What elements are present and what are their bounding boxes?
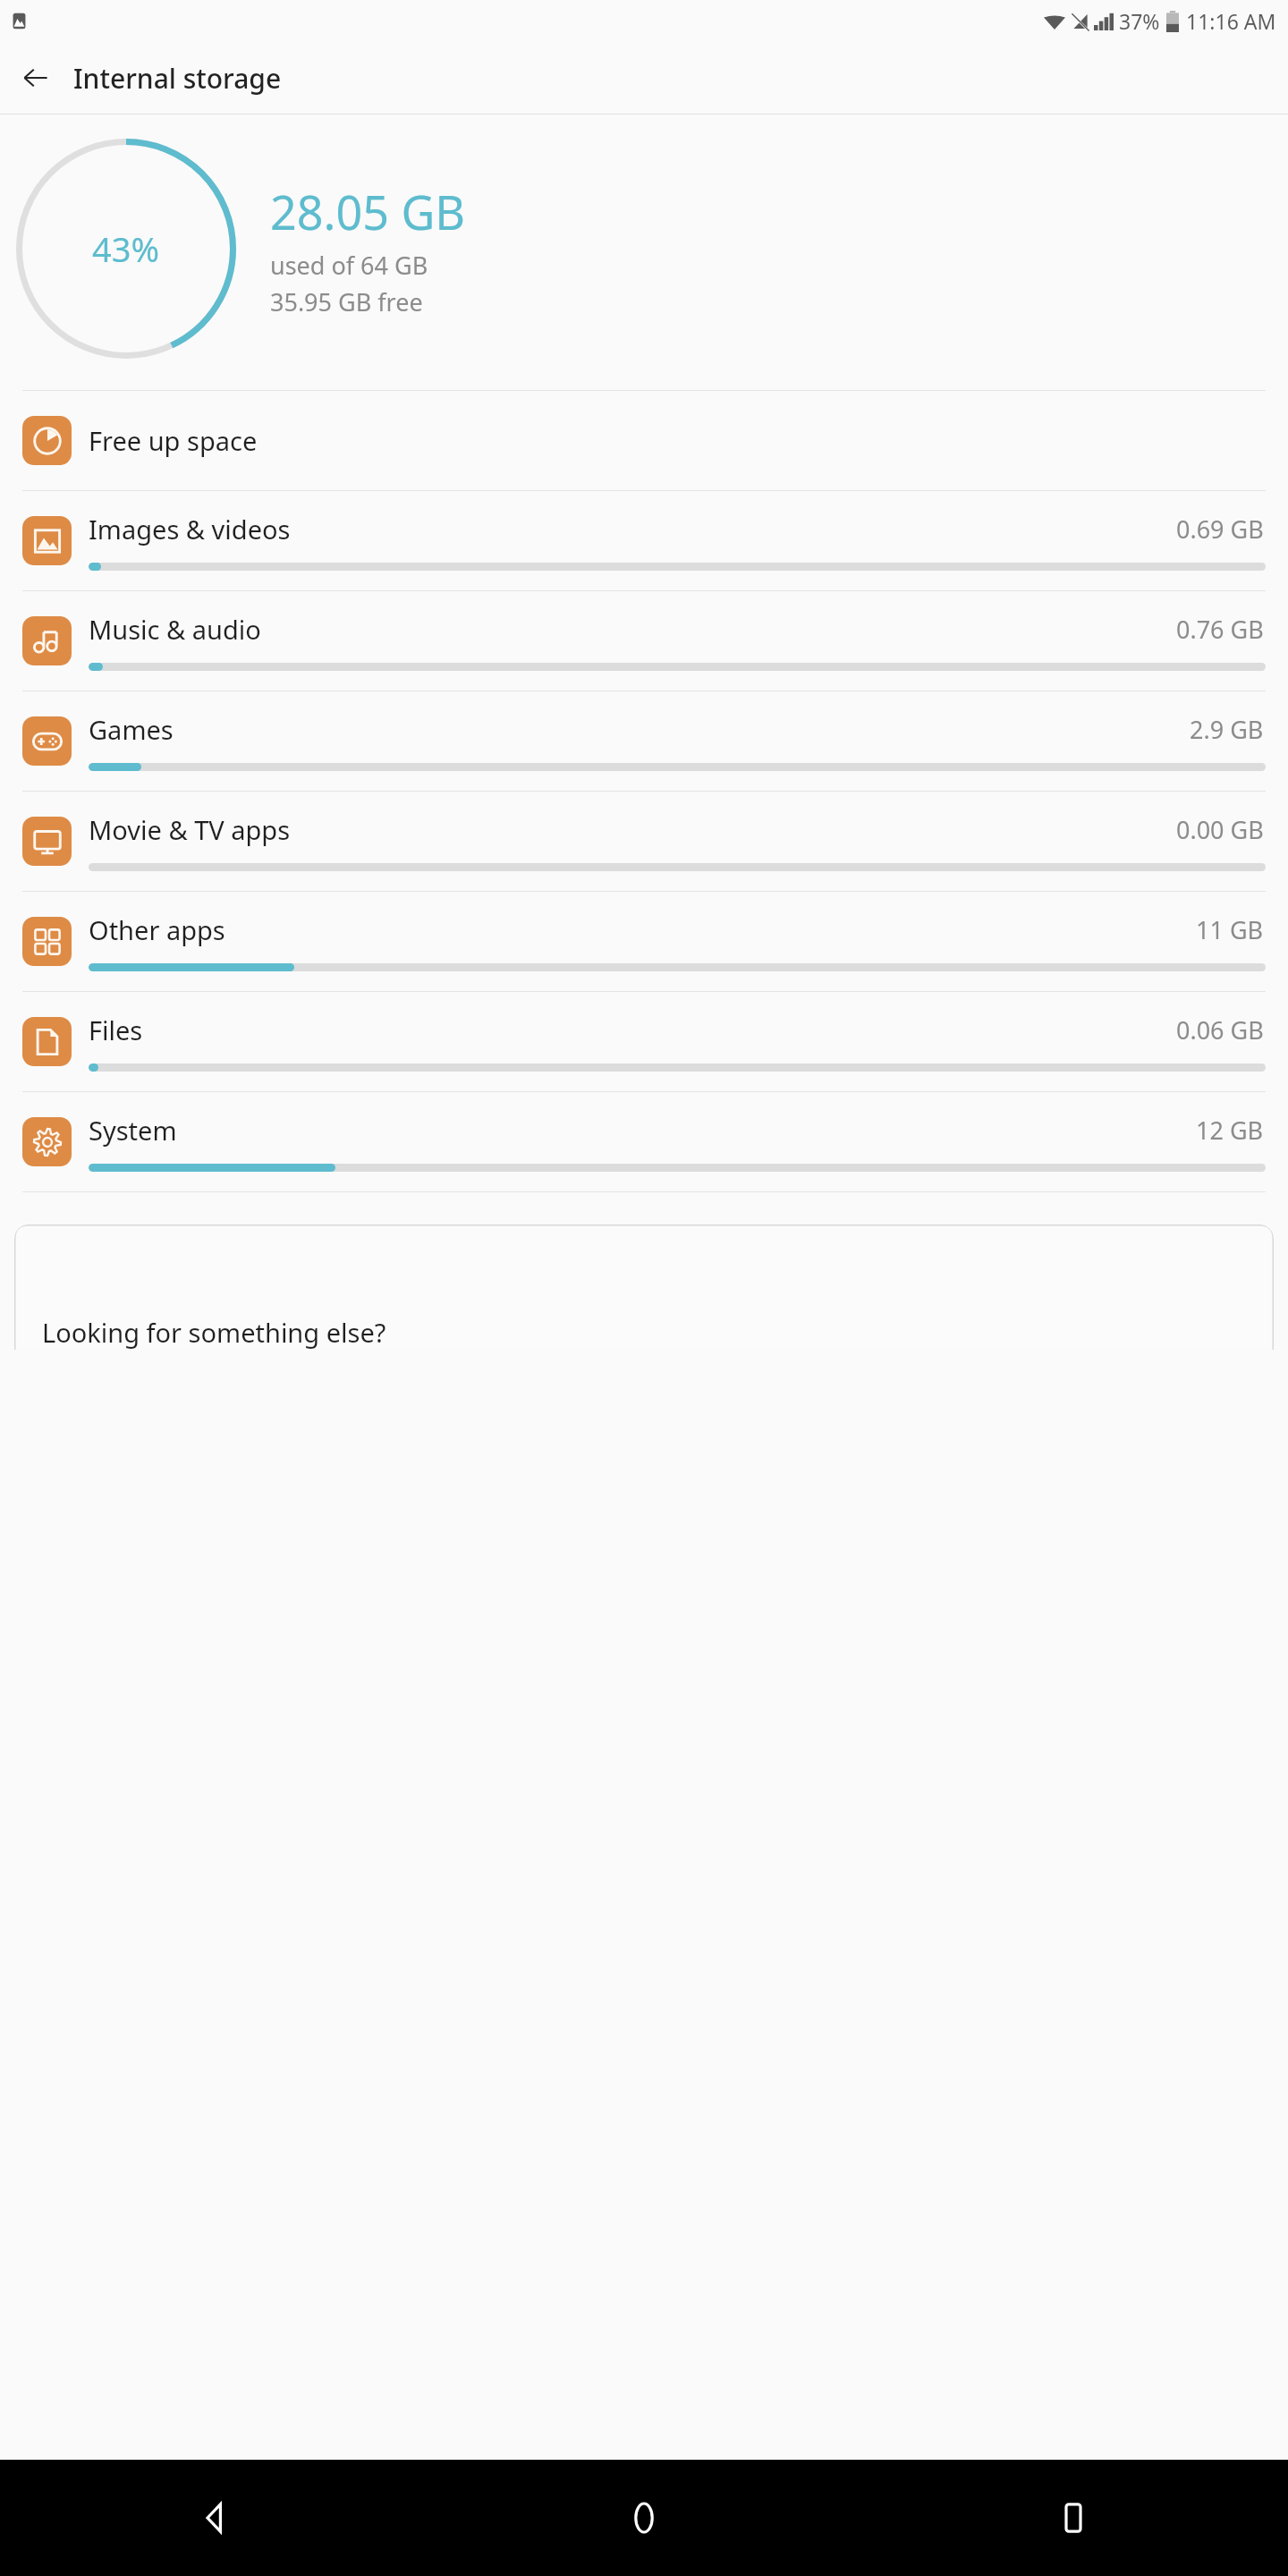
staticText: 0.06 GB bbox=[1176, 1013, 1264, 1046]
staticText: 28.05 GB bbox=[270, 180, 466, 243]
staticText: 37% bbox=[1119, 7, 1160, 35]
button[interactable]: Music & audio bbox=[0, 591, 1288, 691]
staticText: 0.76 GB bbox=[1176, 613, 1264, 646]
button[interactable]: Files bbox=[0, 992, 1288, 1091]
staticText: 11 GB bbox=[1196, 913, 1264, 946]
staticText: 12 GB bbox=[1196, 1114, 1264, 1147]
staticText: used of 64 GB bbox=[270, 249, 428, 282]
staticText: 0.00 GB bbox=[1176, 813, 1264, 846]
staticText: Free up space bbox=[89, 423, 1266, 458]
button[interactable]: Movie & TV apps bbox=[0, 792, 1288, 891]
staticText: 43% bbox=[92, 225, 160, 272]
staticText: 2.9 GB bbox=[1190, 713, 1264, 746]
button[interactable]: Images & videos bbox=[0, 491, 1288, 590]
staticText: 35.95 GB free bbox=[270, 285, 423, 318]
staticText: 11:16 AM bbox=[1186, 7, 1276, 35]
button[interactable]: Recents bbox=[859, 2460, 1288, 2576]
button[interactable]: Back bbox=[0, 2460, 429, 2576]
button[interactable]: Free up space bbox=[0, 391, 1288, 490]
staticText: Looking for something else? bbox=[42, 1315, 386, 1350]
staticText: System bbox=[89, 1113, 1196, 1148]
button[interactable]: Other apps bbox=[0, 892, 1288, 991]
button[interactable]: Back bbox=[11, 53, 61, 103]
button[interactable]: Home bbox=[429, 2460, 859, 2576]
staticText: Other apps bbox=[89, 912, 1196, 947]
staticText: 0.69 GB bbox=[1176, 513, 1264, 546]
staticText: Movie & TV apps bbox=[89, 812, 1176, 847]
button[interactable]: System bbox=[0, 1092, 1288, 1191]
staticText: Music & audio bbox=[89, 612, 1176, 647]
button[interactable]: Looking for something else? bbox=[14, 1224, 1274, 1350]
staticText: Files bbox=[89, 1013, 1176, 1047]
staticText: Internal storage bbox=[73, 60, 282, 97]
button[interactable]: Games bbox=[0, 691, 1288, 791]
staticText: Images & videos bbox=[89, 512, 1176, 547]
staticText: Games bbox=[89, 712, 1190, 747]
